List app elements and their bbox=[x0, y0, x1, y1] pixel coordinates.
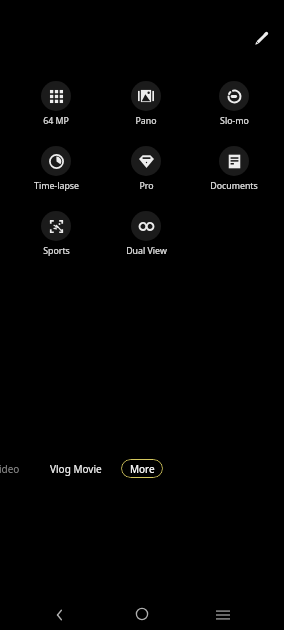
staticText: Sports bbox=[43, 245, 70, 257]
staticText: More bbox=[130, 462, 155, 476]
button[interactable]: Edit bbox=[248, 26, 274, 52]
button[interactable]: Dual View bbox=[104, 211, 188, 257]
button[interactable]: ideo bbox=[0, 459, 20, 479]
staticText: Vlog Movie bbox=[50, 462, 102, 476]
button[interactable]: Pano bbox=[104, 81, 188, 127]
staticText: Pano bbox=[135, 115, 157, 127]
staticText: Dual View bbox=[126, 245, 167, 257]
button[interactable]: Sports bbox=[14, 211, 98, 257]
button[interactable]: Documents bbox=[192, 146, 276, 192]
button[interactable]: Recents bbox=[205, 597, 241, 630]
button[interactable]: Pro bbox=[104, 146, 188, 192]
staticText: Pro bbox=[139, 180, 154, 192]
button[interactable]: 64 MP bbox=[14, 81, 98, 127]
staticText: ideo bbox=[0, 462, 20, 476]
button[interactable]: Home bbox=[124, 596, 160, 630]
button[interactable]: More bbox=[121, 459, 163, 478]
staticText: 64 MP bbox=[43, 115, 69, 127]
button[interactable]: Back bbox=[42, 597, 78, 630]
button[interactable]: Slo-mo bbox=[192, 81, 276, 127]
staticText: Documents bbox=[210, 180, 258, 192]
button[interactable]: Time-lapse bbox=[14, 146, 98, 192]
staticText: Time-lapse bbox=[34, 180, 79, 192]
staticText: Slo-mo bbox=[220, 115, 249, 127]
button[interactable]: Vlog Movie bbox=[50, 459, 102, 479]
